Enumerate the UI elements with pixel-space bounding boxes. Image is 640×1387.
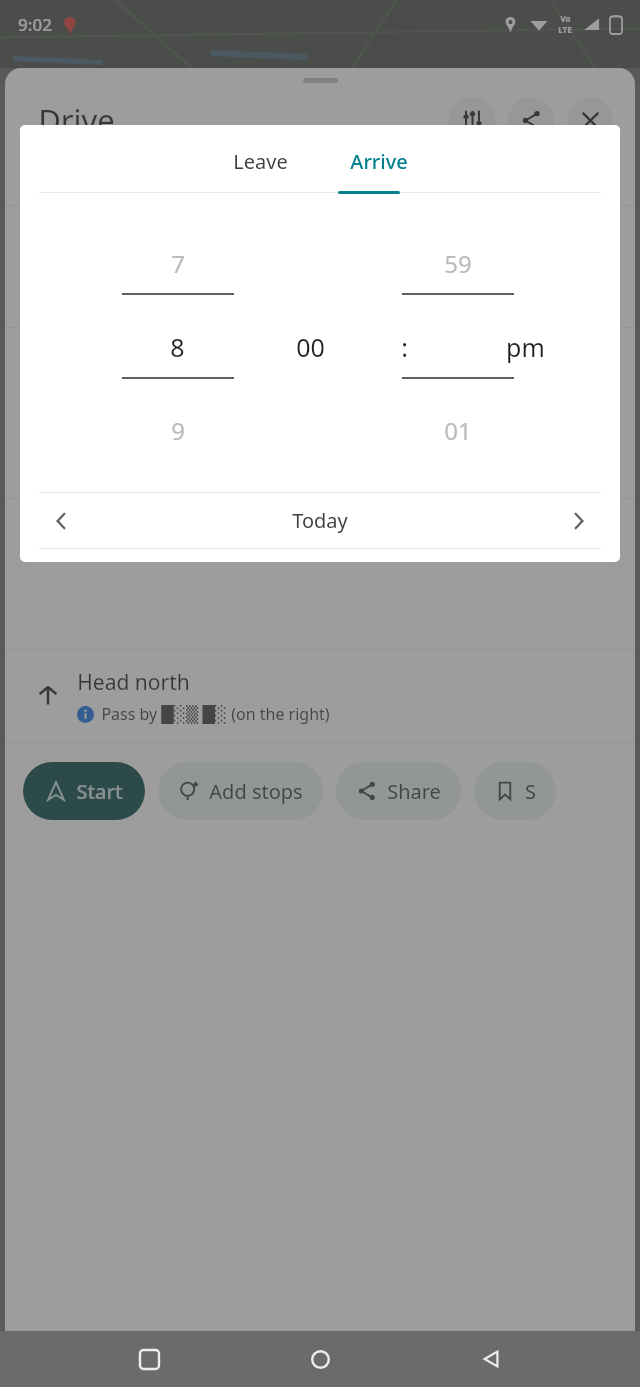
button[interactable]: Next day: [557, 499, 601, 543]
staticText: Arrive: [350, 148, 408, 175]
button[interactable]: 00: [237, 327, 384, 367]
staticText: pm: [506, 330, 545, 364]
staticText: Add stops: [209, 778, 303, 805]
button[interactable]: Previous day: [39, 499, 83, 543]
button[interactable]: Arrive: [328, 142, 430, 181]
button[interactable]: Share: [508, 97, 554, 143]
staticText: 1 hr 12: [239, 168, 295, 191]
button[interactable]: Close: [567, 97, 613, 143]
button[interactable]: 59: [384, 243, 531, 283]
button[interactable]: Back: [469, 1337, 513, 1381]
staticText: 59: [444, 247, 472, 280]
staticText: 7: [171, 247, 185, 280]
staticText: Traffic is light as usual: [33, 356, 220, 381]
staticText: S: [525, 778, 536, 805]
staticText: 9: [171, 414, 185, 447]
button[interactable]: Start: [23, 762, 145, 820]
staticText: Leave: [233, 148, 288, 175]
button[interactable]: Share: [336, 762, 461, 820]
button[interactable]: 9: [104, 410, 251, 450]
staticText: Vo: [560, 13, 571, 24]
button[interactable]: Route options: [449, 97, 495, 143]
button[interactable]: 7: [104, 243, 251, 283]
staticText: :: [401, 330, 408, 364]
button[interactable]: S: [474, 762, 556, 820]
staticText: Pass by █░▒ █░ (on the right): [101, 703, 330, 725]
staticText: Start: [76, 778, 123, 805]
staticText: Today: [292, 507, 348, 534]
staticText: Head north: [77, 668, 190, 697]
staticText: LTE: [558, 24, 572, 35]
staticText: 8: [170, 330, 185, 364]
button[interactable]: Recent apps: [127, 1337, 171, 1381]
staticText: Fastest route now: [33, 272, 167, 294]
staticText: 9:02: [18, 13, 52, 36]
button[interactable]: 10 hr: [548, 168, 621, 191]
staticText: Drive: [38, 99, 115, 141]
button[interactable]: 2 hr 6: [384, 168, 461, 191]
staticText: Share: [387, 778, 441, 805]
button[interactable]: Home: [298, 1337, 342, 1381]
staticText: 01: [444, 414, 472, 447]
button[interactable]: 1 hr 12: [210, 168, 297, 191]
button[interactable]: Add stops: [158, 762, 323, 820]
button[interactable]: pm: [452, 327, 599, 367]
staticText: Steps & more: [33, 525, 154, 551]
staticText: 00: [296, 330, 325, 364]
button[interactable]: Leave: [211, 142, 310, 181]
button[interactable]: 01: [384, 410, 531, 450]
button[interactable]: 8: [104, 327, 251, 367]
